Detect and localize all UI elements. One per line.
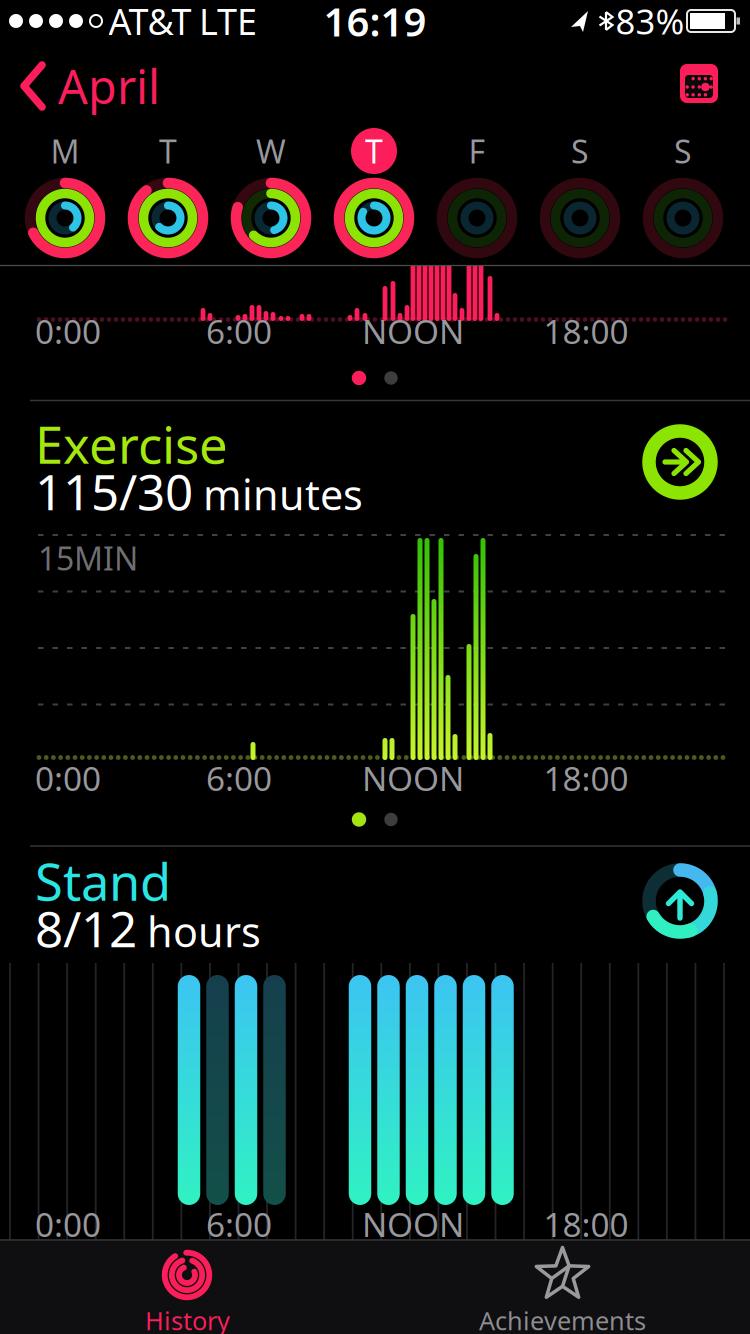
- staticText: 6:00: [206, 756, 272, 800]
- staticText: W: [256, 130, 286, 172]
- staticText: S: [674, 130, 692, 172]
- button[interactable]: Day T: [120, 118, 216, 266]
- button[interactable]: Stand details: [635, 856, 725, 946]
- staticText: History: [145, 1304, 230, 1334]
- staticText: 18:00: [543, 309, 628, 353]
- button[interactable]: Day S: [532, 118, 628, 266]
- staticText: T: [159, 130, 177, 172]
- staticText: April: [58, 55, 160, 117]
- staticText: Exercise: [35, 410, 228, 478]
- staticText: LTE: [199, 0, 257, 45]
- staticText: hours: [147, 904, 261, 959]
- staticText: minutes: [203, 467, 363, 522]
- staticText: 8/12: [35, 895, 137, 961]
- staticText: AT&T: [108, 0, 191, 45]
- staticText: 18:00: [543, 1202, 628, 1246]
- staticText: 0:00: [35, 1202, 101, 1246]
- staticText: 6:00: [206, 309, 272, 353]
- button[interactable]: Day W: [223, 118, 319, 266]
- staticText: M: [50, 130, 79, 172]
- button[interactable]: History: [0, 1241, 375, 1334]
- staticText: 0:00: [35, 309, 101, 353]
- button[interactable]: Day T: [326, 118, 422, 266]
- staticText: 15MIN: [38, 537, 138, 579]
- button[interactable]: Exercise details: [635, 417, 725, 507]
- staticText: 115/30: [35, 458, 193, 524]
- staticText: NOON: [362, 1202, 464, 1246]
- staticText: 0:00: [35, 756, 101, 800]
- button[interactable]: Day M: [17, 118, 113, 266]
- staticText: NOON: [362, 756, 464, 800]
- button[interactable]: Day S: [635, 118, 731, 266]
- staticText: F: [468, 130, 485, 172]
- staticText: Achievements: [479, 1304, 646, 1334]
- button[interactable]: Achievements: [375, 1241, 750, 1334]
- button[interactable]: April: [20, 55, 160, 117]
- staticText: 18:00: [543, 756, 628, 800]
- staticText: 6:00: [206, 1202, 272, 1246]
- staticText: NOON: [362, 309, 464, 353]
- button[interactable]: Calendar: [677, 61, 721, 105]
- staticText: S: [571, 130, 589, 172]
- staticText: Stand: [35, 847, 171, 915]
- button[interactable]: Day F: [429, 118, 525, 266]
- staticText: T: [365, 130, 383, 172]
- staticText: 83%: [615, 0, 684, 44]
- staticText: 16:19: [323, 0, 426, 47]
